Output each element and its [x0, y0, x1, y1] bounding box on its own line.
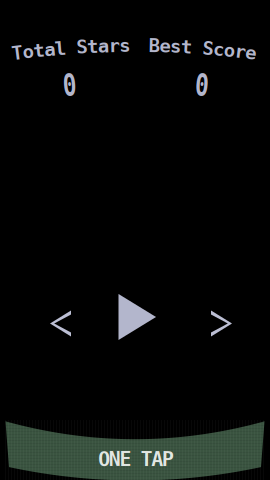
staticText: t	[181, 36, 192, 58]
staticText: r	[108, 35, 119, 57]
button[interactable]: O	[0, 0, 270, 480]
button[interactable]: Next level	[0, 0, 270, 480]
staticText: 0	[192, 66, 211, 103]
staticText: r	[235, 41, 246, 62]
staticText: t	[87, 36, 98, 57]
staticText: N	[109, 447, 121, 471]
staticText: e	[159, 35, 170, 57]
staticText: a	[44, 39, 55, 60]
staticText: E	[119, 447, 131, 471]
staticText: T	[12, 42, 23, 64]
staticText: P	[162, 448, 174, 471]
staticText: e	[245, 42, 256, 64]
staticText: A	[151, 447, 163, 471]
staticText: t	[33, 40, 44, 61]
staticText: S	[76, 36, 87, 58]
staticText: T	[141, 447, 153, 471]
button[interactable]: Previous level	[0, 0, 270, 480]
staticText: B	[149, 35, 160, 56]
staticText: o	[224, 39, 235, 61]
button[interactable]: Play	[0, 0, 270, 480]
staticText: O	[98, 448, 110, 471]
staticText	[130, 447, 142, 471]
staticText: l	[55, 38, 66, 59]
staticText: c	[213, 38, 224, 60]
staticText: a	[98, 35, 109, 57]
staticText: s	[119, 35, 130, 56]
staticText: s	[170, 35, 181, 57]
staticText: S	[202, 37, 213, 59]
staticText: 0	[60, 66, 79, 103]
staticText: o	[22, 41, 33, 63]
